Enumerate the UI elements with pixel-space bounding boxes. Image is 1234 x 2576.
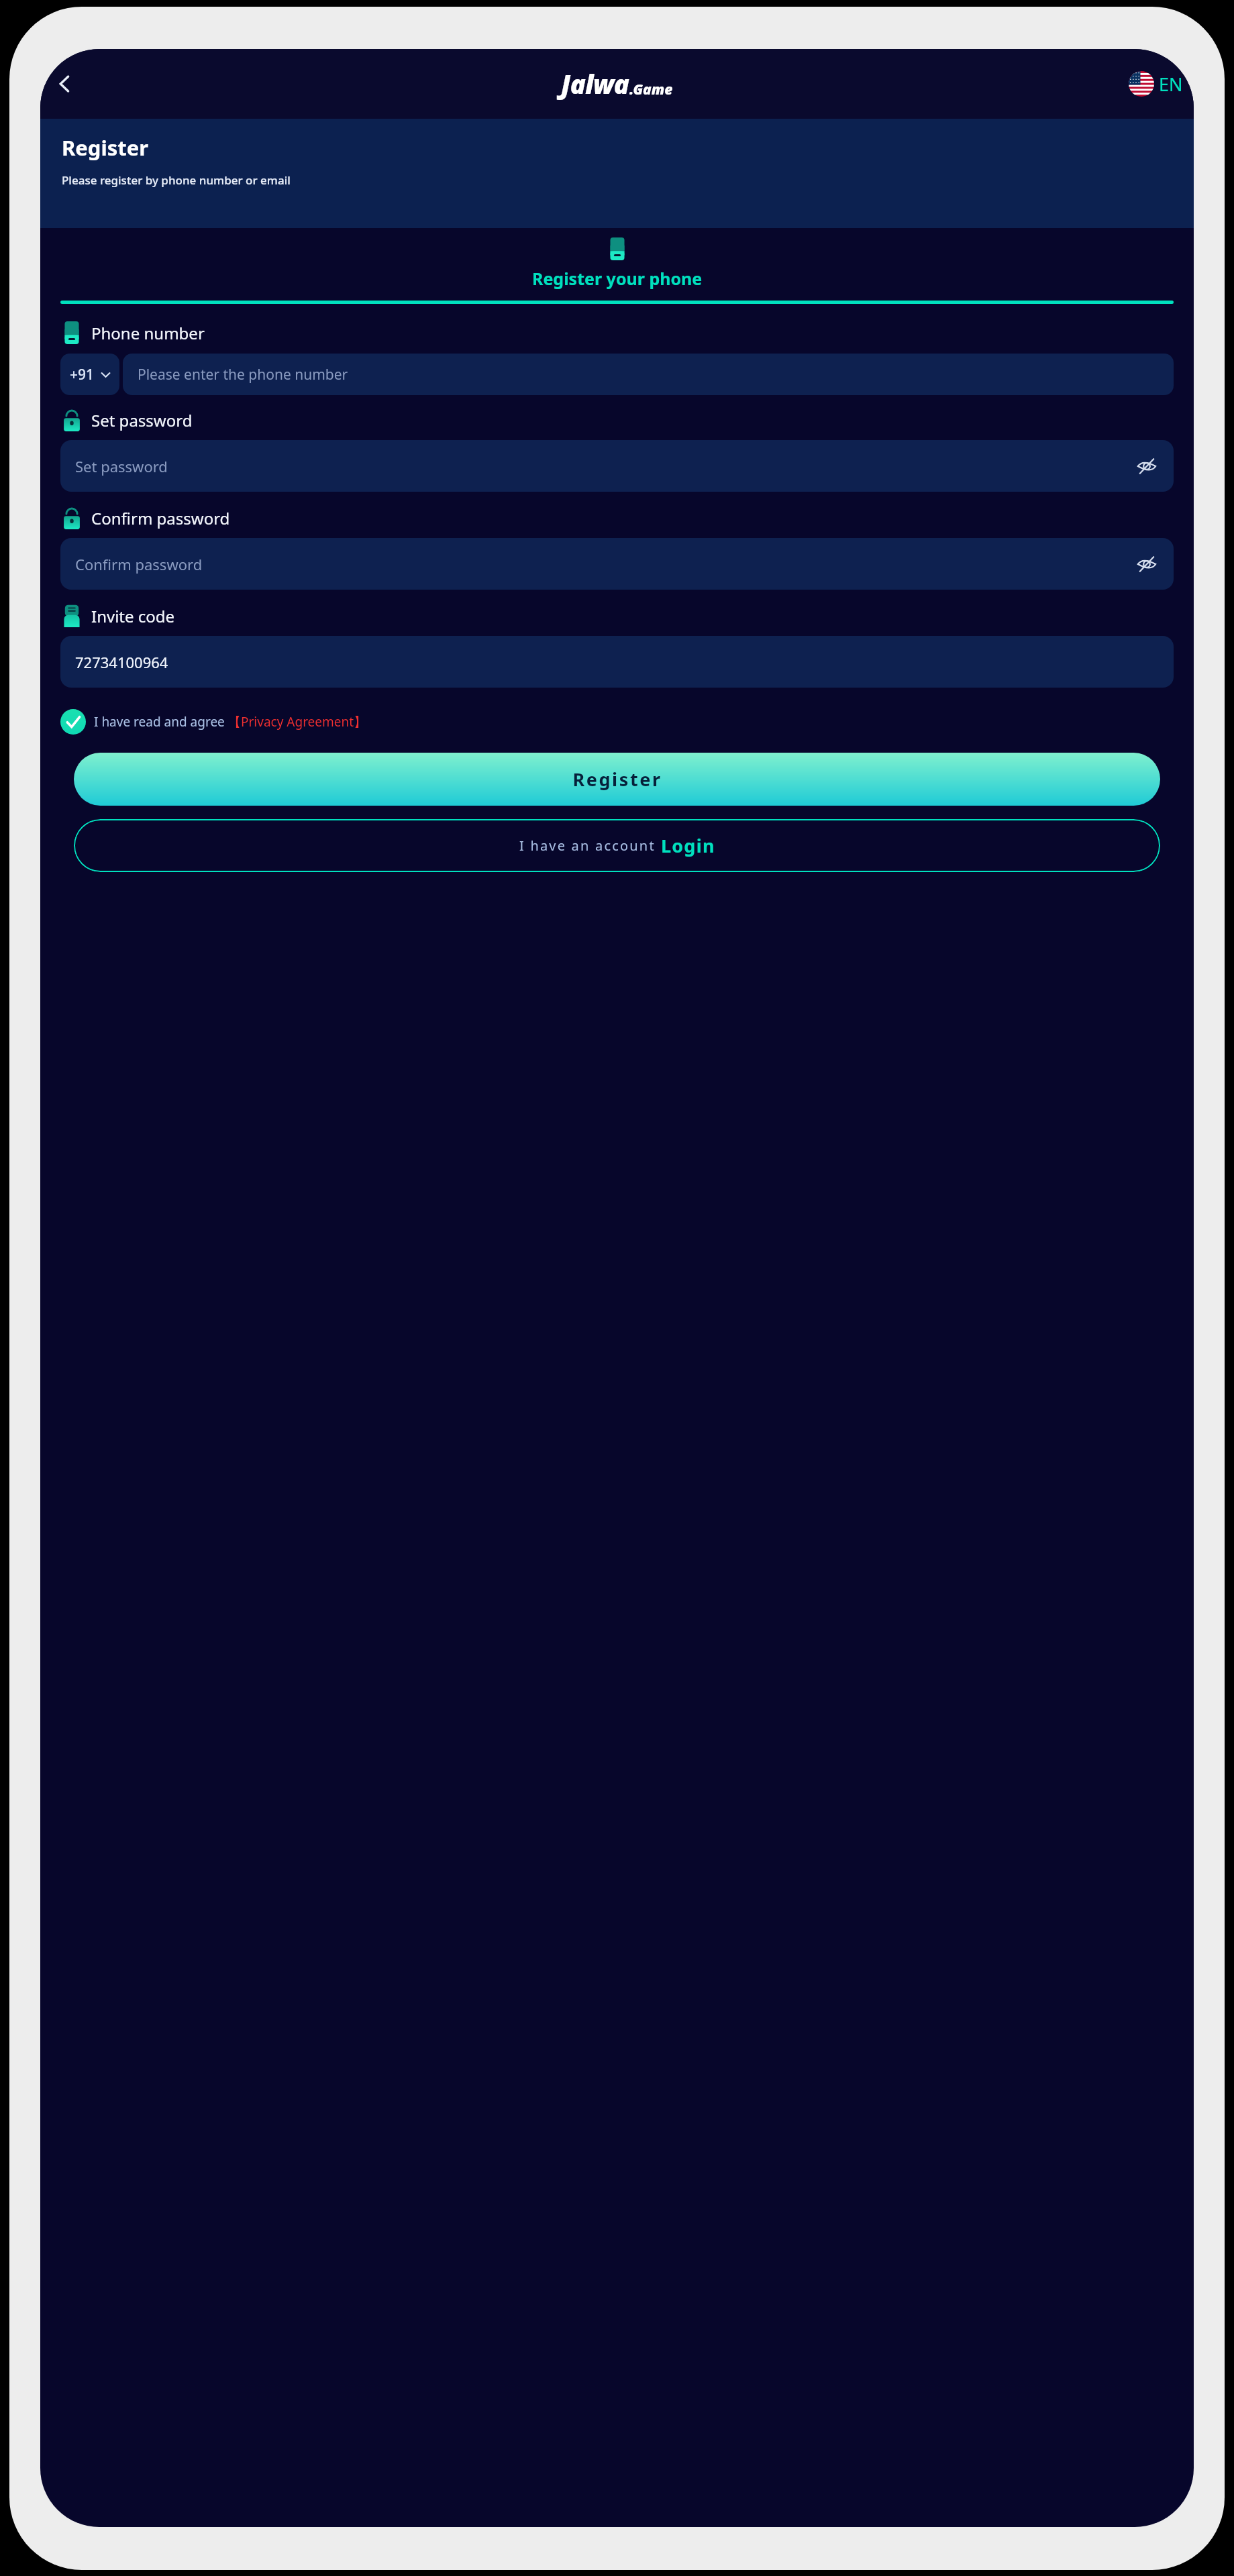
button[interactable]: I have an account <box>74 819 1160 872</box>
staticText: Please register by phone number or email <box>62 172 291 188</box>
staticText: Register <box>572 767 662 792</box>
button[interactable]: Confirm password <box>60 538 1174 590</box>
staticText: Login <box>661 833 715 858</box>
staticText: Jalwa <box>561 66 629 101</box>
button[interactable]: Set password <box>60 440 1174 492</box>
staticText: Register your phone <box>532 267 703 290</box>
staticText: +91 <box>70 365 95 384</box>
staticText: I have read and agree <box>94 713 228 731</box>
button[interactable]: EN <box>1126 68 1186 99</box>
button[interactable]: I have read and agree <box>60 709 1174 735</box>
staticText: I have an account <box>519 837 661 855</box>
staticText: Register <box>62 133 149 162</box>
staticText: Set password <box>91 409 193 431</box>
staticText: EN <box>1159 72 1183 97</box>
staticText: Phone number <box>91 322 205 344</box>
staticText: Confirm password <box>75 554 203 574</box>
button[interactable]: Back <box>47 66 83 102</box>
staticText: .Game <box>629 80 673 99</box>
button[interactable]: Register your phone <box>40 237 1194 304</box>
staticText: Set password <box>75 456 168 476</box>
staticText: 72734100964 <box>75 652 168 672</box>
button[interactable]: Show password <box>1135 552 1159 576</box>
button[interactable]: Register <box>74 753 1160 806</box>
button[interactable]: Show password <box>1135 454 1159 478</box>
button[interactable]: Please enter the phone number <box>123 354 1174 395</box>
button[interactable]: +91 <box>60 354 119 395</box>
button[interactable]: 72734100964 <box>60 636 1174 688</box>
staticText: Please enter the phone number <box>138 365 348 384</box>
staticText: Confirm password <box>91 507 230 529</box>
staticText: Invite code <box>91 605 175 627</box>
staticText: 【Privacy Agreement】 <box>228 713 367 731</box>
